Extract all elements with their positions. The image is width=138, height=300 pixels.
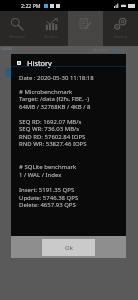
staticText: 1 / WAL / Index bbox=[19, 171, 62, 179]
staticText: # SQLite benchmark bbox=[19, 163, 77, 171]
staticText: 64MB / 32768KB / 4KB / 8 bbox=[19, 103, 91, 111]
staticText: RND RD: 57602.84 IOPS bbox=[19, 133, 86, 141]
button[interactable]: Ok bbox=[42, 239, 95, 256]
staticText: Results bbox=[44, 34, 58, 39]
staticText: Andro bbox=[93, 46, 110, 54]
staticText: # Microbenchmark bbox=[19, 88, 73, 96]
button[interactable]: Measure bbox=[0, 11, 34, 46]
button[interactable]: History bbox=[68, 11, 103, 46]
button[interactable]: Setting bbox=[103, 11, 138, 46]
staticText: Measure bbox=[9, 34, 26, 39]
staticText: Insert: 5191.35 QPS bbox=[19, 186, 75, 194]
staticText: Target: /data (f2fs, FBE, -) bbox=[19, 95, 90, 103]
staticText: 2:22 PM bbox=[21, 2, 41, 9]
staticText: Delete: 4657.93 QPS bbox=[19, 201, 76, 209]
staticText: SEQ WR: 736.03 MB/s bbox=[19, 125, 80, 133]
staticText: Bench bbox=[110, 46, 127, 54]
button[interactable]: Results bbox=[34, 11, 68, 46]
staticText: SEQ RD: 1692.07 MB/s bbox=[19, 118, 82, 126]
staticText: Update: 5746.38 QPS bbox=[19, 194, 79, 202]
staticText: Setting bbox=[114, 34, 128, 39]
staticText: History bbox=[27, 58, 52, 68]
staticText: Ok bbox=[65, 244, 73, 252]
staticText: Date : 2020-05-30 11:18:18 bbox=[19, 74, 94, 82]
staticText: RND WR: 53827.46 IOPS bbox=[19, 140, 87, 148]
